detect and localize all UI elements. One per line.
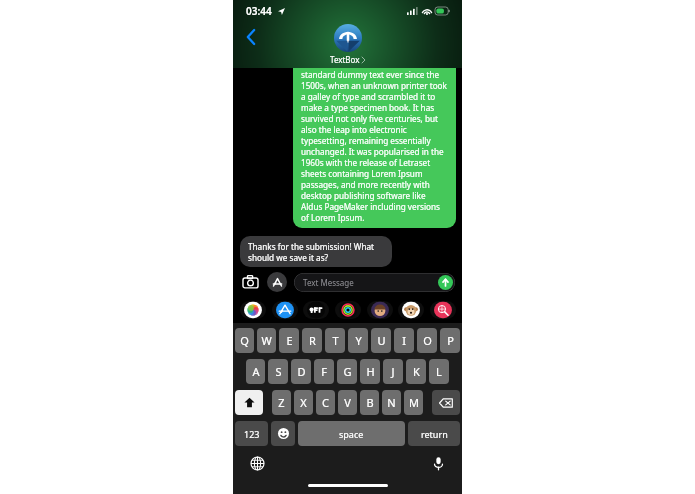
staticText: H [366,364,375,379]
staticText: C [322,395,329,410]
button[interactable]: H [360,359,380,384]
staticText: Thanks for the submission! What should w… [248,241,384,262]
button[interactable]: U [371,328,391,353]
button[interactable]: Z [272,390,291,415]
staticText: O [423,333,432,348]
staticText: G [343,364,352,379]
button[interactable]: A [246,359,265,384]
staticText: 03:44 [246,4,272,18]
button[interactable]: S [268,359,288,384]
staticText: D [297,364,306,379]
staticText: N [387,395,396,410]
button[interactable]: N [382,390,401,415]
button[interactable]: Q [235,328,254,353]
button[interactable]: Text Message [294,273,455,292]
button[interactable]: standard dummy text ever since the 1500s… [293,68,456,228]
staticText: W [261,333,272,348]
button[interactable]: Send [438,275,453,290]
button[interactable]: E [279,328,299,353]
button[interactable]: Apple Pay [301,300,330,320]
staticText: R [309,333,316,348]
button[interactable]: C [316,390,335,415]
button[interactable]: Backspace [432,390,460,415]
staticText: J [391,364,395,379]
staticText: L [436,364,442,379]
staticText: Z [278,395,285,410]
staticText: S [275,364,282,379]
button[interactable]: Dictate [428,453,448,473]
button[interactable]: X [294,390,313,415]
staticText: E [286,333,293,348]
button[interactable]: L [429,359,449,384]
staticText: F [321,364,327,379]
staticText: B [366,395,374,410]
button[interactable]: Monkey sticker [396,300,425,320]
button[interactable]: J [383,359,403,384]
button[interactable]: W [257,328,276,353]
staticText: X [300,395,307,410]
staticText: K [413,364,420,379]
button[interactable]: M [404,390,423,415]
button[interactable]: B [360,390,379,415]
button[interactable]: T [325,328,345,353]
staticText: standard dummy text ever since the 1500s… [301,69,448,223]
button[interactable]: I [394,328,414,353]
button[interactable]: Y [348,328,368,353]
staticText: space [339,428,364,440]
staticText: A [252,364,260,379]
button[interactable]: space [298,421,405,446]
button[interactable]: App Store [267,272,287,292]
button[interactable]: Emoji [271,421,295,446]
button[interactable]: Back [239,25,263,49]
button[interactable]: F [314,359,334,384]
button[interactable]: Change keyboard language [247,453,267,473]
button[interactable]: 123 [235,421,268,446]
button[interactable]: TextBox [330,24,365,65]
staticText: Text Message [303,277,354,288]
staticText: 123 [244,428,260,440]
button[interactable]: Search [428,300,457,320]
button[interactable]: Thanks for the submission! What should w… [240,236,392,267]
button[interactable]: App Store [270,300,299,320]
button[interactable]: O [417,328,437,353]
staticText: T [332,333,339,348]
staticText: Q [240,333,249,348]
staticText: I [402,333,406,348]
staticText: return [421,428,448,440]
button[interactable]: Memoji [365,300,394,320]
staticText: U [377,333,386,348]
button[interactable]: G [337,359,357,384]
staticText: V [344,395,351,410]
button[interactable]: Shift [235,390,263,415]
button[interactable]: K [406,359,426,384]
staticText: Y [355,333,362,348]
staticText: M [409,395,419,410]
staticText: TextBox [330,54,360,65]
button[interactable]: R [302,328,322,353]
button[interactable]: Camera [240,272,260,292]
button[interactable]: return [408,421,460,446]
button[interactable]: Photos [238,300,267,320]
button[interactable]: V [338,390,357,415]
staticText: P [447,333,454,348]
button[interactable]: Fitness [333,300,362,320]
button[interactable]: D [291,359,311,384]
button[interactable]: P [440,328,460,353]
